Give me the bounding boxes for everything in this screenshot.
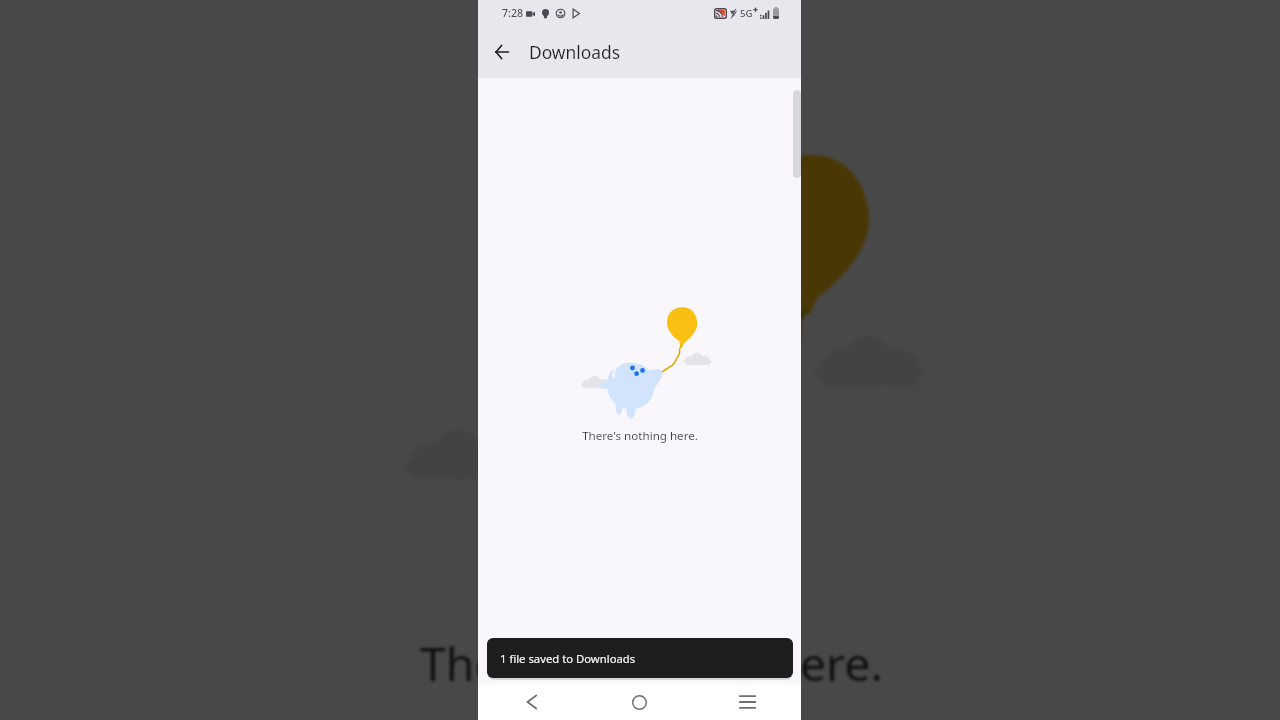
- staticText: There's nothing here.: [582, 428, 698, 444]
- button[interactable]: Back: [484, 34, 520, 70]
- button[interactable]: 1 file saved to Downloads: [487, 638, 793, 678]
- button[interactable]: Back: [478, 684, 585, 720]
- staticText: Downloads: [529, 40, 621, 64]
- button[interactable]: Home: [585, 684, 694, 720]
- staticText: 1 file saved to Downloads: [500, 651, 636, 666]
- staticText: There's nothing here.: [420, 631, 883, 694]
- staticText: 7:28: [502, 6, 524, 20]
- button[interactable]: Recent apps: [694, 684, 801, 720]
- staticText: 5G: [740, 7, 753, 20]
